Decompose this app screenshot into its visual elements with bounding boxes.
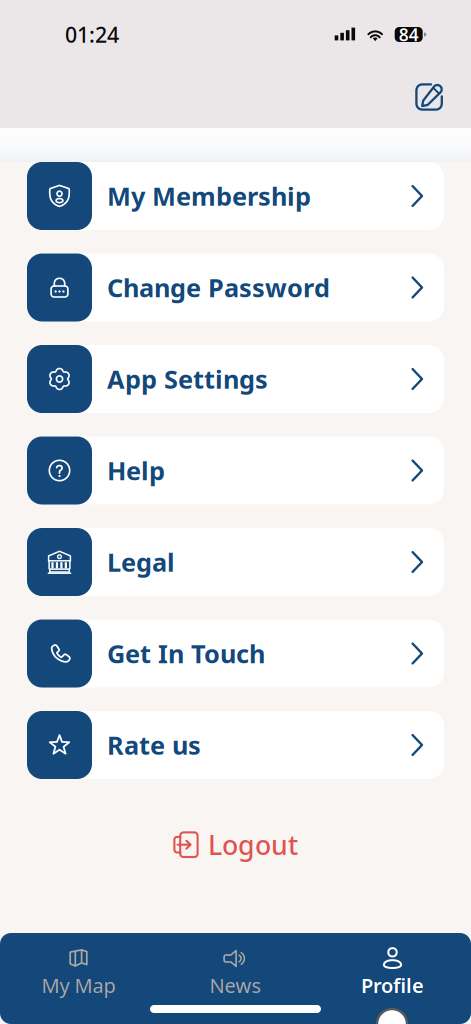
staticText: My Map [41,972,115,999]
button[interactable]: News [157,933,314,1024]
button[interactable]: Edit profile [415,83,471,111]
button[interactable]: Rate us [27,711,444,779]
button[interactable]: Help [27,436,444,504]
staticText: Logout [208,827,298,862]
staticText: 01:24 [65,20,119,49]
staticText: Rate us [107,728,201,762]
button[interactable]: Logout [163,819,308,870]
staticText: Get In Touch [107,637,265,670]
staticText: Change Password [107,271,330,304]
button[interactable]: Legal [27,528,444,596]
button[interactable]: App Settings [27,345,444,413]
staticText: 84 [399,23,419,46]
staticText: News [209,972,261,999]
button[interactable]: My Map [0,933,157,1024]
staticText: Legal [107,545,175,579]
button[interactable]: Profile [314,933,471,1024]
button[interactable]: My Membership [27,162,444,230]
staticText: Profile [361,972,424,999]
button[interactable]: Get In Touch [27,619,444,687]
button[interactable]: Change Password [27,253,444,321]
staticText: App Settings [107,362,268,396]
staticText: My Membership [107,179,311,213]
staticText: Help [107,454,165,487]
